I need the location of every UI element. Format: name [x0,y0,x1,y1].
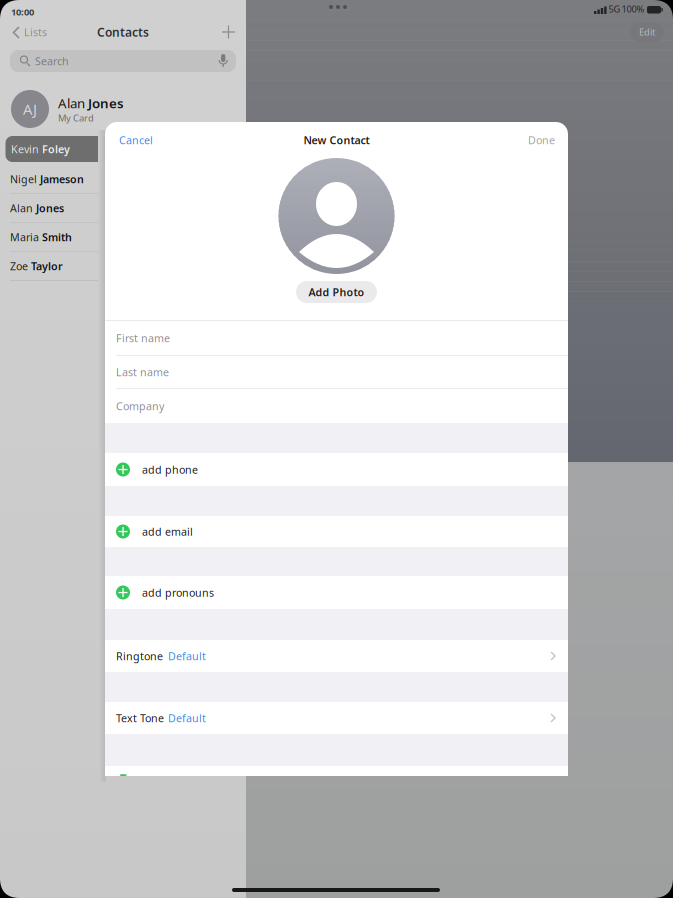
button[interactable]: AJ [0,0,673,898]
staticText: Text Tone [116,711,164,725]
staticText: Kevin [11,142,42,156]
button[interactable]: Cancel [0,0,673,898]
staticText: 10:00 [11,6,34,18]
staticText: Nigel [10,172,40,186]
staticText: Search [35,54,69,68]
staticText: Last name [116,365,169,379]
button[interactable]: add email [0,0,673,898]
button[interactable]: add phone [0,0,673,898]
button[interactable]: Alan [0,0,673,898]
staticText: New Contact [303,133,369,147]
staticText: Jameson [40,172,84,186]
button[interactable]: Add contact [0,0,673,898]
staticText: Contacts [97,24,149,40]
staticText: Jones [88,94,124,112]
staticText: Foley [42,142,70,156]
staticText: Alan [58,94,88,112]
button[interactable]: add pronouns [0,0,673,898]
staticText: Ringtone [116,649,163,663]
button[interactable]: Lists [0,0,673,898]
button[interactable]: Contact photo [0,0,673,898]
button[interactable]: Ringtone [0,0,673,898]
staticText: 5G [608,3,620,15]
button[interactable]: Edit [0,0,673,898]
button[interactable]: Search [0,0,673,898]
staticText: Taylor [31,259,63,273]
staticText: add pronouns [142,585,214,600]
staticText: Maria [10,230,42,244]
staticText: add email [142,524,193,539]
staticText: Lists [24,25,47,39]
button[interactable]: Last name [0,0,673,898]
staticText: Add Photo [308,285,364,299]
staticText: 100% [621,3,644,15]
staticText: Zoe [10,259,31,273]
button[interactable]: Company [0,0,673,898]
staticText: Jones [36,201,64,215]
staticText: My Card [58,112,94,124]
staticText: Cancel [119,133,153,147]
staticText: Default [168,711,206,725]
staticText: AJ [23,99,37,119]
staticText: Company [116,399,164,413]
button[interactable]: Done [0,0,673,898]
staticText: First name [116,331,170,345]
staticText: add phone [142,462,198,477]
button[interactable]: Maria [0,0,673,898]
staticText: Default [168,649,206,663]
button[interactable]: Kevin [0,0,673,898]
button[interactable]: First name [0,0,673,898]
button[interactable]: Zoe [0,0,673,898]
staticText: Done [528,133,555,147]
staticText: Alan [10,201,36,215]
button[interactable]: Text Tone [0,0,673,898]
button[interactable]: Add Photo [0,0,673,898]
staticText: Edit [639,26,655,38]
button[interactable]: Nigel [0,0,673,898]
staticText: Smith [42,230,72,244]
